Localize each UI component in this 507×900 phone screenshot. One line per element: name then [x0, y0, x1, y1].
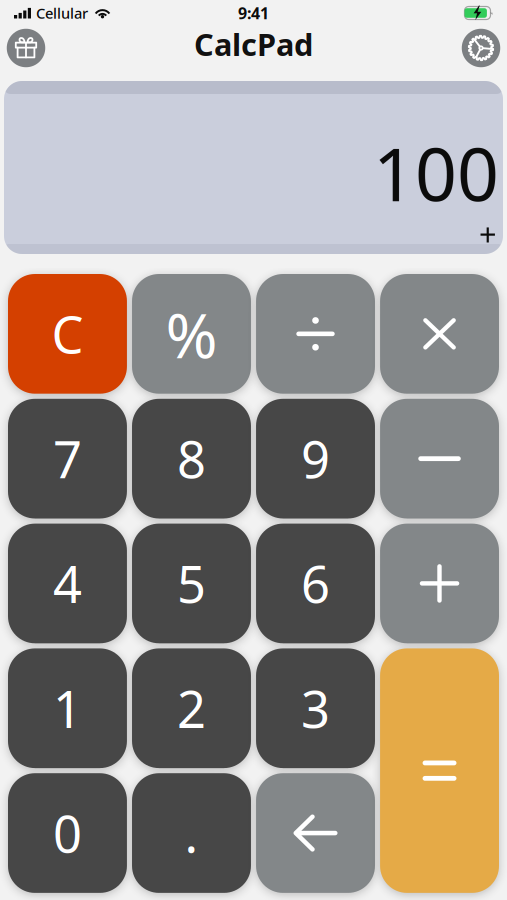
button[interactable]: 2: [132, 648, 251, 768]
staticText: 0: [53, 799, 82, 867]
staticText: CalcPad: [194, 24, 313, 64]
button[interactable]: 5: [132, 524, 251, 643]
button[interactable]: .: [132, 773, 251, 893]
button[interactable]: Backspace: [256, 773, 375, 893]
button[interactable]: %: [132, 274, 251, 394]
button[interactable]: Settings: [459, 26, 503, 70]
staticText: .: [184, 799, 198, 867]
button[interactable]: Divide: [256, 274, 375, 394]
button[interactable]: Subtract: [380, 399, 499, 518]
staticText: 9:41: [238, 2, 269, 24]
button[interactable]: 7: [8, 399, 127, 518]
staticText: 7: [53, 425, 82, 492]
button[interactable]: Multiply: [380, 274, 499, 394]
staticText: 3: [301, 675, 330, 742]
staticText: 9: [301, 425, 330, 492]
staticText: +: [479, 213, 497, 254]
staticText: 6: [301, 550, 330, 617]
button[interactable]: Rewards: [4, 26, 48, 70]
button[interactable]: 4: [8, 524, 127, 643]
staticText: 100: [373, 124, 499, 221]
button[interactable]: C: [8, 274, 127, 394]
button[interactable]: 6: [256, 524, 375, 643]
button[interactable]: 8: [132, 399, 251, 518]
button[interactable]: 0: [8, 773, 127, 893]
staticText: Cellular: [36, 3, 88, 23]
staticText: 2: [177, 675, 206, 742]
staticText: %: [165, 292, 217, 375]
staticText: C: [51, 300, 83, 367]
staticText: 5: [177, 550, 206, 617]
staticText: 4: [53, 550, 82, 617]
button[interactable]: Equals: [380, 648, 499, 893]
staticText: 1: [53, 675, 82, 742]
button[interactable]: 3: [256, 648, 375, 768]
button[interactable]: Add: [380, 524, 499, 643]
button[interactable]: 1: [8, 648, 127, 768]
staticText: 8: [177, 425, 206, 492]
button[interactable]: 9: [256, 399, 375, 518]
